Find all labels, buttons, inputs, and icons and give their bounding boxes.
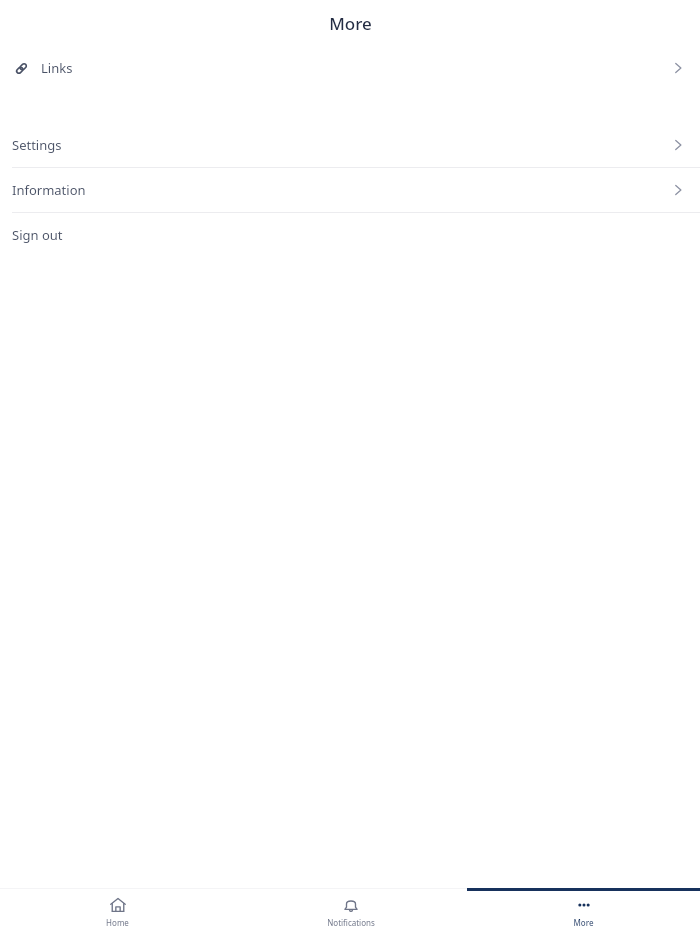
staticText: Home (106, 917, 129, 928)
button[interactable]: Notifications (234, 888, 467, 934)
staticText: Sign out (12, 226, 63, 244)
other: More (575, 896, 593, 914)
button[interactable]: Information (0, 168, 700, 212)
staticText: Information (12, 181, 86, 199)
button[interactable]: Home (0, 888, 234, 934)
button[interactable]: Settings (0, 123, 700, 167)
button[interactable]: Sign out (0, 213, 700, 257)
staticText: Settings (12, 136, 62, 154)
other: Notifications (342, 896, 360, 914)
staticText: Notifications (327, 917, 375, 928)
button[interactable]: Links (0, 46, 700, 90)
staticText: Links (41, 59, 73, 77)
other: Home (109, 896, 127, 914)
staticText: More (329, 12, 372, 35)
staticText: More (573, 917, 594, 928)
button[interactable]: More (467, 888, 700, 934)
